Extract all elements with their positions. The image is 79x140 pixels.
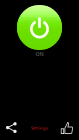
button[interactable]: Power — [9, 5, 69, 57]
button[interactable]: Share — [0, 119, 24, 137]
staticText: ON — [35, 50, 43, 58]
staticText: Settings — [31, 125, 48, 131]
button[interactable]: Like — [55, 119, 79, 137]
button[interactable]: Settings — [24, 119, 54, 137]
